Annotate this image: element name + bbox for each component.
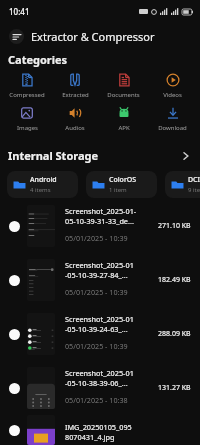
button[interactable]: Screenshot_2025-01	[0, 253, 200, 307]
staticText: Screenshot_2025-01	[65, 260, 134, 270]
staticText: ColorOS	[109, 175, 137, 185]
button[interactable]: APK	[99, 102, 148, 135]
staticText: DCIM	[188, 175, 200, 185]
button[interactable]: Images	[3, 102, 51, 135]
button[interactable]: Screenshot_2025-01	[0, 361, 200, 415]
other: More	[181, 151, 191, 161]
button[interactable]: Internal Storage	[0, 148, 200, 163]
staticText: Screenshot_2025-01	[65, 314, 134, 324]
staticText: Download	[158, 124, 187, 132]
staticText: 05-10-39-31-33_de...	[65, 216, 134, 226]
staticText: Compressed	[9, 91, 45, 99]
button[interactable]: ColorOS	[86, 171, 157, 198]
staticText: -05-10-39-27-84_...	[65, 270, 128, 280]
staticText: 05/01/2025 - 10:39	[65, 341, 128, 351]
staticText: 288.09 KB	[158, 329, 191, 339]
staticText: 1 item	[109, 186, 127, 194]
staticText: Categories	[8, 52, 68, 67]
staticText: 271.10 KB	[158, 221, 191, 231]
staticText: -05-10-39-24-63_...	[65, 324, 128, 334]
staticText: 9 items	[188, 186, 200, 194]
staticText: 4 items	[30, 186, 51, 194]
staticText: Extracted	[62, 91, 89, 99]
staticText: 05/01/2025 - 10:39	[65, 233, 128, 243]
staticText: 8070431_4.jpg	[65, 432, 115, 442]
staticText: 182.49 KB	[158, 275, 191, 285]
staticText: -05-10-38-39-06_...	[65, 378, 128, 388]
staticText: Internal Storage	[8, 148, 99, 163]
staticText: Android	[30, 175, 57, 185]
staticText: 10:41	[9, 6, 30, 17]
staticText: Images	[17, 124, 38, 132]
button[interactable]: DCIM	[165, 171, 200, 198]
staticText: Documents	[107, 91, 140, 99]
staticText: Screenshot_2025-01-	[65, 206, 137, 216]
button[interactable]: Screenshot_2025-01	[0, 307, 200, 361]
staticText: Audios	[65, 124, 85, 132]
button[interactable]: Documents	[99, 69, 148, 102]
button[interactable]: Extracted	[51, 69, 99, 102]
staticText: IMG_20250105_095	[65, 422, 132, 432]
button[interactable]: IMG_20250105_095	[0, 415, 200, 445]
button[interactable]: Compressed	[3, 69, 51, 102]
staticText: Videos	[163, 91, 182, 99]
button[interactable]: Audios	[51, 102, 99, 135]
staticText: APK	[118, 124, 130, 132]
staticText: Extractor & Compressor	[31, 29, 155, 44]
staticText: 05/01/2025 - 10:39	[65, 287, 128, 297]
button[interactable]: Screenshot_2025-01-	[0, 199, 200, 253]
staticText: Screenshot_2025-01	[65, 368, 134, 378]
staticText: 05/01/2025 - 10:38	[65, 395, 128, 405]
staticText: 131.27 KB	[158, 383, 191, 393]
button[interactable]: Android	[7, 171, 78, 198]
button[interactable]: Videos	[148, 69, 197, 102]
button[interactable]: Download	[148, 102, 197, 135]
button[interactable]: Menu	[9, 29, 24, 44]
